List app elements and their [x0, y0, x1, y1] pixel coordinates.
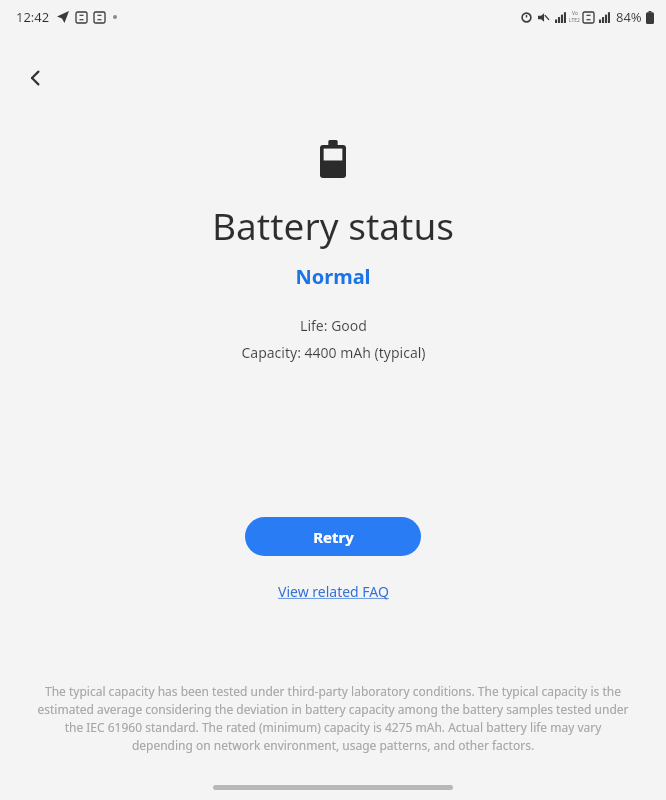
button[interactable]: Retry	[245, 517, 421, 556]
staticText: Vo	[572, 10, 578, 17]
staticText: The typical capacity has been tested und…	[34, 683, 632, 754]
staticText: Capacity: 4400 mAh (typical)	[241, 343, 426, 362]
staticText: Life: Good	[300, 316, 367, 335]
staticText: Battery status	[212, 200, 454, 250]
staticText: Normal	[295, 263, 371, 290]
button[interactable]: View related FAQ	[272, 578, 395, 605]
button[interactable]: Back	[14, 56, 58, 100]
staticText: 84%	[616, 8, 642, 26]
staticText: View related FAQ	[278, 582, 389, 601]
staticText: Retry	[313, 527, 354, 547]
staticText: LTE2	[569, 17, 580, 24]
staticText: 12:42	[16, 8, 50, 26]
